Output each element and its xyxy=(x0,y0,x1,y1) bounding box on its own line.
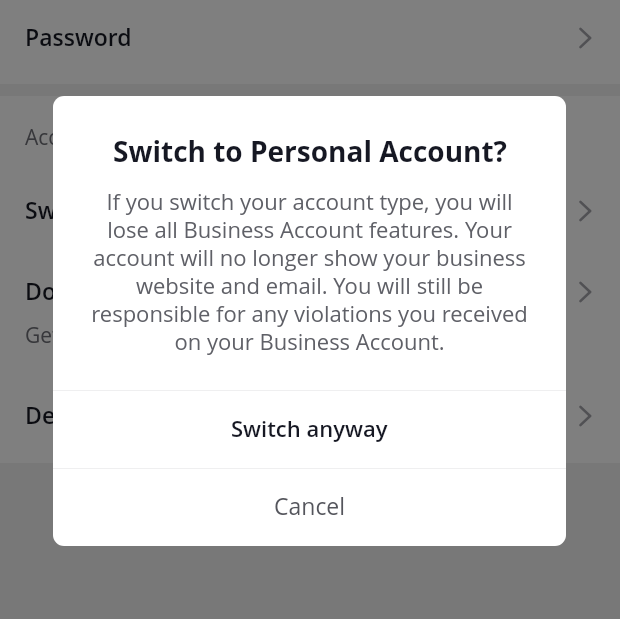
button[interactable]: Delete account xyxy=(0,365,620,463)
staticText: Cancel xyxy=(274,490,346,521)
staticText: Switch anyway xyxy=(231,413,388,443)
staticText: Switch to Personal Account xyxy=(25,194,327,225)
button[interactable]: Password xyxy=(0,0,620,84)
staticText: Delete account xyxy=(25,399,192,430)
staticText: If you switch your account type, you wil… xyxy=(88,186,531,357)
button[interactable]: Switch anyway xyxy=(53,391,566,468)
staticText: Switch to Personal Account? xyxy=(113,132,507,170)
staticText: Account xyxy=(25,123,105,152)
button[interactable]: Cancel xyxy=(53,469,566,546)
button[interactable]: Download your data xyxy=(0,259,620,365)
staticText: Get a copy of your data xyxy=(25,321,253,350)
staticText: Password xyxy=(25,21,132,52)
staticText: Download your data xyxy=(25,275,250,306)
button[interactable]: Switch to Personal Account xyxy=(0,159,620,259)
